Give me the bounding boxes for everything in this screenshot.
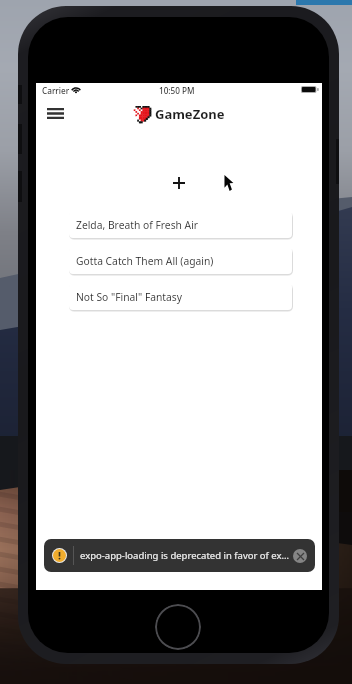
staticText: Not So "Final" Fantasy (76, 290, 183, 304)
button[interactable]: Add game (167, 171, 191, 195)
staticText: 10:50 PM (159, 85, 195, 96)
button[interactable]: Zelda, Breath of Fresh Air (69, 211, 292, 238)
button[interactable]: Not So "Final" Fantasy (69, 283, 292, 310)
staticText: Zelda, Breath of Fresh Air (76, 218, 199, 232)
button[interactable]: Gotta Catch Them All (again) (69, 247, 292, 274)
staticText: expo-app-loading is deprecated in favor … (80, 549, 290, 562)
staticText: Gotta Catch Them All (again) (76, 254, 214, 268)
staticText: Carrier (42, 85, 70, 96)
button[interactable]: Open menu (39, 97, 72, 130)
button[interactable]: Dismiss notification (293, 549, 307, 563)
staticText: GameZone (155, 105, 225, 123)
